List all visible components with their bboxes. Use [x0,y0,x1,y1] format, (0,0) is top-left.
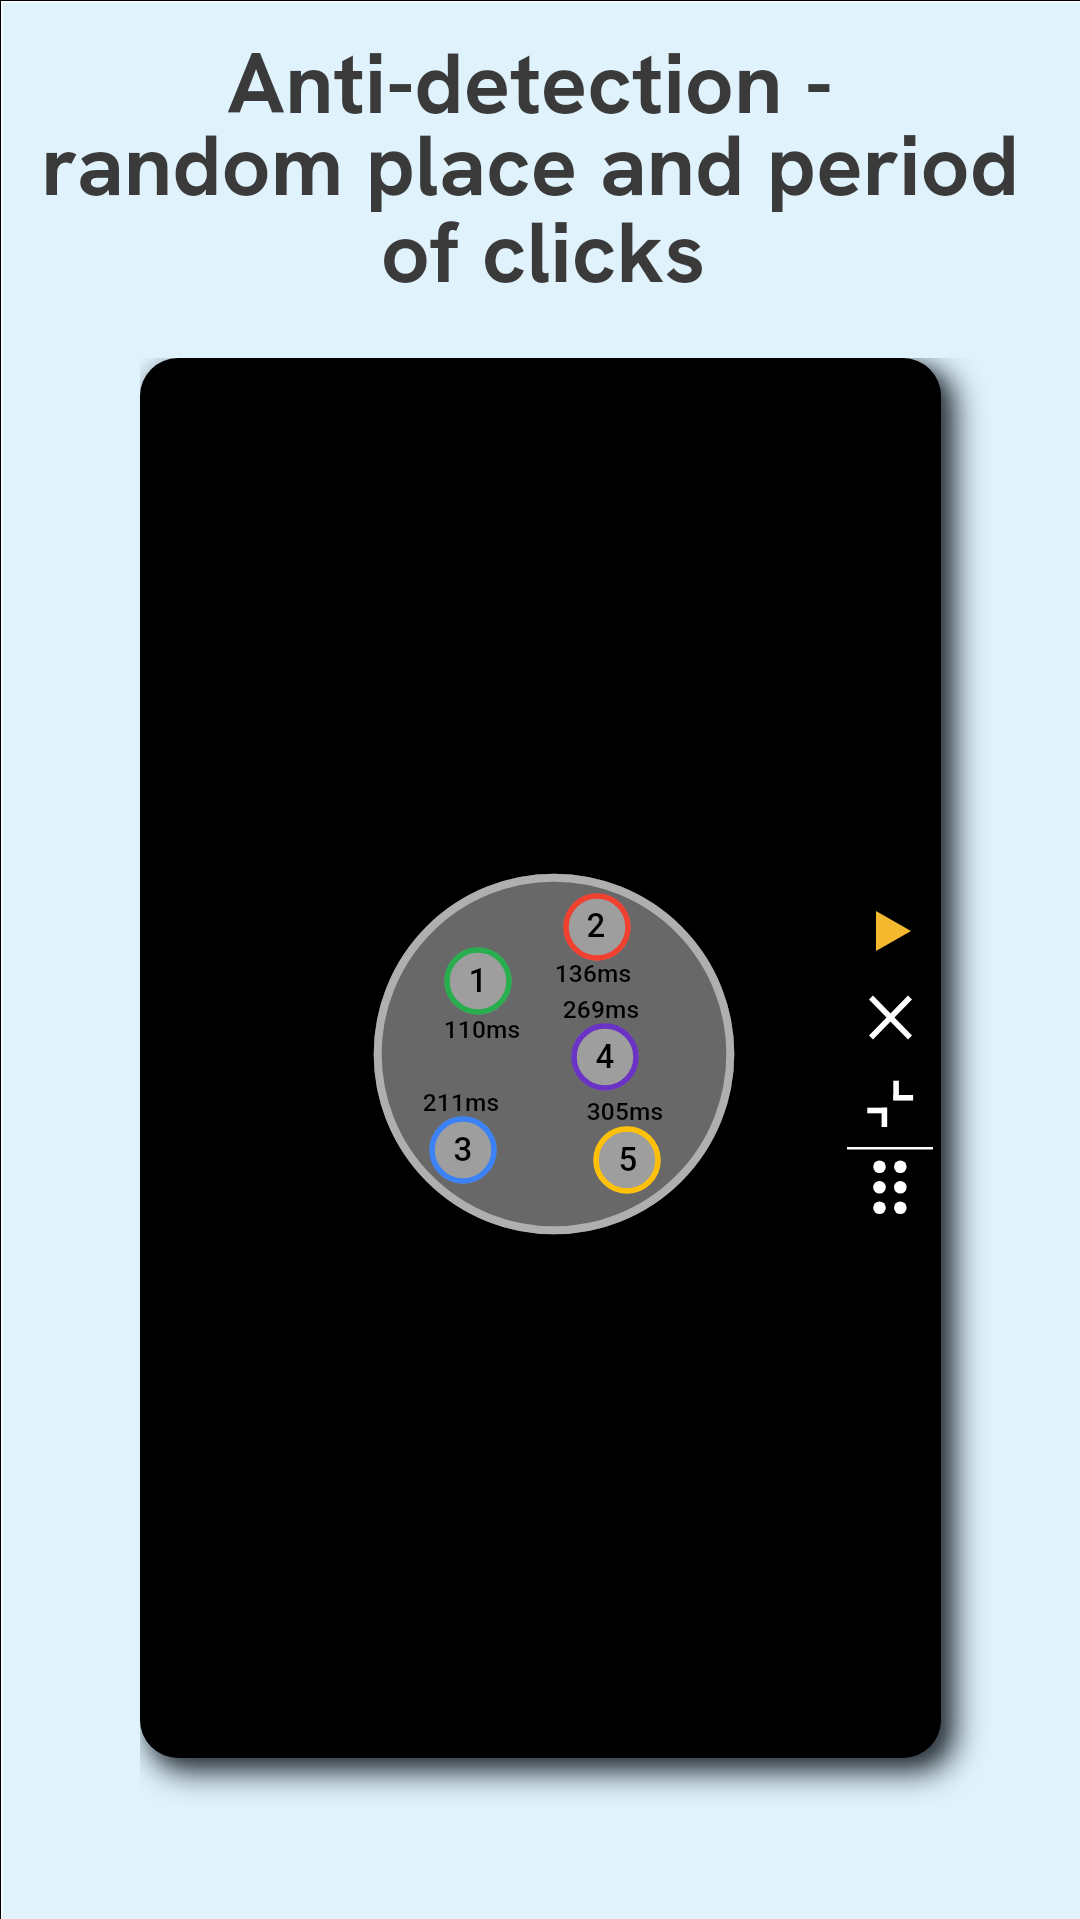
staticText: 3 [423,1130,503,1169]
staticText: of clicks [3,196,1080,308]
button[interactable]: Start [860,901,920,961]
staticText: 5 [588,1140,668,1179]
staticText: 110ms [382,1015,582,1044]
button[interactable]: Resize [860,1075,920,1135]
staticText: 1 [438,961,518,1000]
staticText: 269ms [501,995,701,1024]
button[interactable]: Move [840,1140,940,1220]
staticText: random place and period [0,109,1070,221]
staticText: 4 [565,1037,645,1076]
staticText: 136ms [493,959,693,988]
staticText: 211ms [361,1088,561,1117]
button[interactable]: Close [862,989,918,1045]
staticText: 305ms [525,1097,725,1126]
staticText: Anti-detection - [0,27,1070,139]
staticText: 2 [556,906,636,945]
